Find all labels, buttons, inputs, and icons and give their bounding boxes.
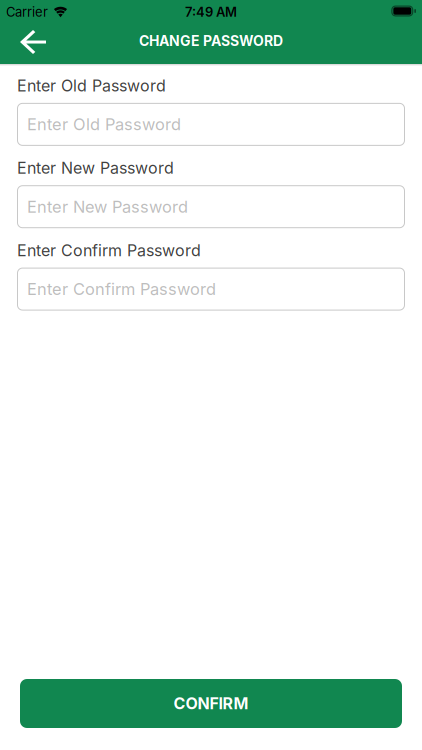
button[interactable]: Enter New Password [17,185,405,228]
button[interactable]: Enter Old Password [17,103,405,146]
staticText: Enter New Password [27,197,188,217]
staticText: Enter New Password [17,158,174,178]
staticText: CONFIRM [173,694,248,713]
staticText: Enter Confirm Password [27,279,216,299]
button[interactable]: Enter Confirm Password [17,268,405,311]
staticText: Carrier [6,4,48,20]
staticText: CHANGE PASSWORD [139,32,283,49]
staticText: Enter Confirm Password [17,241,201,260]
button[interactable]: Back [0,22,46,64]
staticText: Enter Old Password [17,76,166,95]
staticText: 7:49 AM [185,4,237,20]
button[interactable]: CONFIRM [20,679,402,728]
staticText: Enter Old Password [27,114,181,134]
